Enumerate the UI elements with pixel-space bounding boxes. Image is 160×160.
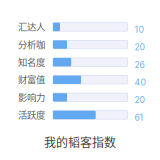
staticText: 20 xyxy=(135,42,145,52)
button[interactable]: 财富值 xyxy=(14,70,160,87)
staticText: 影响力 xyxy=(18,90,45,104)
button[interactable]: 知名度 xyxy=(14,52,160,70)
staticText: 61 xyxy=(135,112,144,123)
staticText: 财富值 xyxy=(18,72,45,86)
button[interactable]: 分析咖 xyxy=(14,35,160,52)
staticText: 知名度 xyxy=(18,55,45,68)
staticText: 10 xyxy=(135,24,144,35)
button[interactable]: 影响力 xyxy=(14,87,160,105)
button[interactable]: 我的韬客指数 xyxy=(0,132,160,152)
staticText: 20 xyxy=(135,95,145,105)
staticText: 活跃度 xyxy=(18,108,45,121)
staticText: 汇达人 xyxy=(18,20,45,33)
staticText: 我的韬客指数 xyxy=(44,133,116,151)
staticText: 26 xyxy=(135,59,145,70)
staticText: 分析咖 xyxy=(18,37,45,51)
button[interactable]: 汇达人 xyxy=(14,17,160,35)
button[interactable]: 活跃度 xyxy=(14,105,160,123)
staticText: 40 xyxy=(135,77,146,88)
